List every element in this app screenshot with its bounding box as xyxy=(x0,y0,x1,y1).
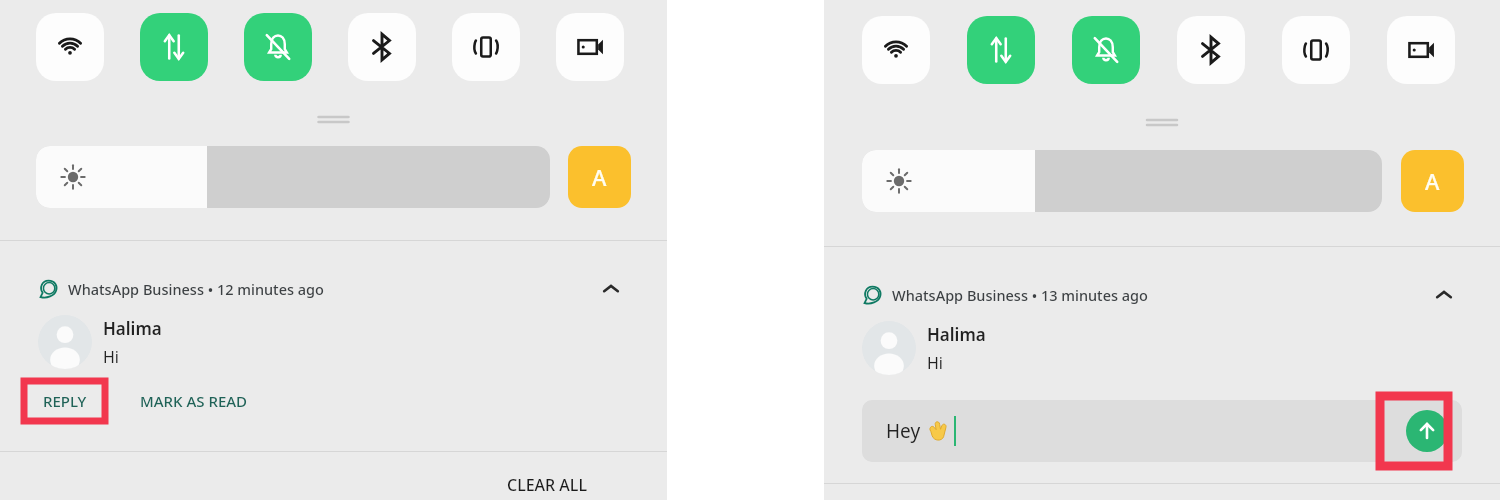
button[interactable]: Do not disturb xyxy=(244,13,312,81)
button[interactable]: WhatsApp Business • 13 minutes ago xyxy=(824,279,1500,311)
button[interactable]: REPLY xyxy=(30,385,100,417)
staticText: Hi xyxy=(927,352,943,374)
staticText: Halima xyxy=(103,317,162,340)
button[interactable]: WhatsApp Business • 12 minutes ago xyxy=(0,273,667,305)
button[interactable]: Brightness xyxy=(862,150,1382,212)
staticText: Hey xyxy=(886,418,926,444)
button[interactable]: Send xyxy=(1406,410,1448,452)
button[interactable]: Collapse xyxy=(1428,279,1460,311)
button[interactable]: Mobile data xyxy=(140,13,208,81)
button[interactable]: Do not disturb xyxy=(1072,16,1140,84)
button[interactable]: Wi-Fi xyxy=(862,16,930,84)
button[interactable]: Screen record xyxy=(556,13,624,81)
staticText: Halima xyxy=(927,323,986,346)
button[interactable]: Bluetooth xyxy=(1177,16,1245,84)
button[interactable]: Screen record xyxy=(1387,16,1455,84)
button[interactable]: Hey xyxy=(862,400,1462,462)
button[interactable]: A xyxy=(568,146,631,208)
button[interactable]: Bluetooth xyxy=(348,13,416,81)
staticText: WhatsApp Business • 12 minutes ago xyxy=(68,279,324,299)
staticText: Hi xyxy=(103,346,119,368)
button[interactable]: Collapse xyxy=(595,273,627,305)
staticText: A xyxy=(592,162,607,192)
button[interactable]: Brightness xyxy=(36,146,550,208)
button[interactable]: Vibrate xyxy=(1282,16,1350,84)
staticText: MARK AS READ xyxy=(140,391,248,411)
button[interactable]: Mobile data xyxy=(967,16,1035,84)
button[interactable]: MARK AS READ xyxy=(140,385,292,417)
button[interactable]: Wi-Fi xyxy=(36,13,104,81)
button[interactable]: CLEAR ALL xyxy=(507,470,632,500)
button[interactable]: A xyxy=(1401,150,1464,212)
staticText: REPLY xyxy=(43,391,87,411)
button[interactable]: Vibrate xyxy=(452,13,520,81)
staticText: CLEAR ALL xyxy=(507,474,587,496)
staticText: WhatsApp Business • 13 minutes ago xyxy=(892,285,1148,305)
staticText: A xyxy=(1425,166,1440,196)
